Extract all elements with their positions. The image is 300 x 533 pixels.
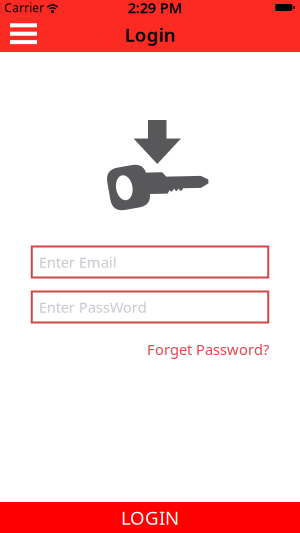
- button[interactable]: Menu: [0, 25, 45, 46]
- staticText: Enter PassWord: [39, 297, 147, 317]
- staticText: Carrier: [4, 0, 44, 15]
- staticText: LOGIN: [121, 505, 179, 530]
- staticText: 2:29 PM: [127, 0, 182, 17]
- staticText: Login: [124, 22, 175, 47]
- staticText: Forget Password?: [147, 339, 269, 359]
- staticText: Enter Email: [39, 252, 117, 272]
- button[interactable]: Forget Password?: [147, 339, 269, 359]
- button[interactable]: LOGIN: [0, 502, 300, 533]
